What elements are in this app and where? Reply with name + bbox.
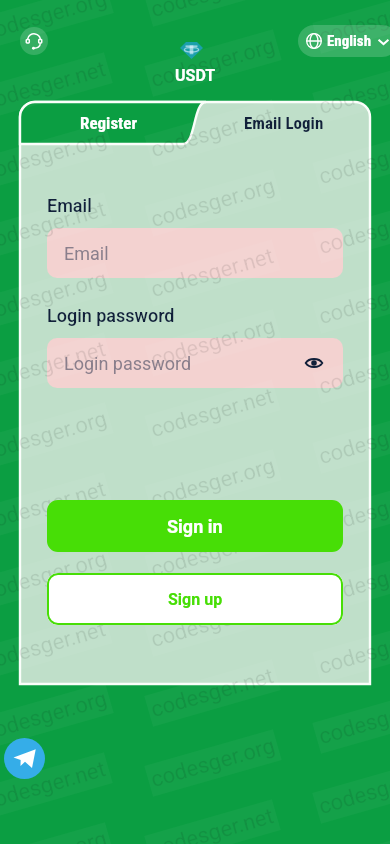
staticText: codesger.org <box>0 546 110 606</box>
staticText: codesger.net <box>316 200 390 260</box>
button[interactable]: English <box>298 25 390 57</box>
staticText: codesger.net <box>148 663 277 723</box>
staticText: codesger.org <box>316 410 390 470</box>
staticText: codesger.org <box>0 266 110 326</box>
staticText: codesger.net <box>148 383 277 443</box>
staticText: Login password <box>47 305 175 326</box>
staticText: codesger.org <box>316 550 390 610</box>
button[interactable]: Email <box>47 228 343 278</box>
staticText: codesger.org <box>0 406 110 466</box>
button[interactable]: Email Login <box>198 102 370 144</box>
staticText: codesger.org <box>148 733 278 793</box>
staticText: Email <box>47 195 92 216</box>
staticText: codesger.net <box>0 616 109 676</box>
staticText: Sign up <box>168 590 223 609</box>
staticText: codesger.org <box>316 0 390 50</box>
staticText: Email Login <box>244 113 324 133</box>
button[interactable]: Login password <box>47 338 343 388</box>
staticText: codesger.org <box>148 313 278 373</box>
staticText: codesger.net <box>316 340 390 400</box>
staticText: codesger.org <box>316 130 390 190</box>
staticText: codesger.org <box>0 126 110 186</box>
staticText: codesger.net <box>0 336 109 396</box>
staticText: USDT <box>175 66 216 85</box>
staticText: codesger.net <box>0 196 109 256</box>
staticText: codesger.net <box>0 476 109 536</box>
button[interactable]: Sign in <box>47 500 343 552</box>
staticText: codesger.org <box>148 453 278 513</box>
staticText: English <box>327 32 372 50</box>
button[interactable]: Register <box>20 102 198 144</box>
staticText: codesger.org <box>0 0 110 46</box>
staticText: codesger.net <box>0 756 109 816</box>
staticText: codesger.org <box>0 686 110 746</box>
staticText: codesger.net <box>148 103 277 163</box>
button[interactable]: Show password <box>299 348 329 378</box>
staticText: codesger.net <box>148 803 277 844</box>
staticText: codesger.net <box>316 760 390 820</box>
staticText: codesger.org <box>148 33 278 93</box>
staticText: codesger.net <box>316 480 390 540</box>
staticText: codesger.net <box>148 523 277 583</box>
staticText: codesger.net <box>0 56 109 116</box>
staticText: Email <box>64 243 109 264</box>
staticText: codesger.net <box>148 0 277 23</box>
staticText: Login password <box>64 353 192 374</box>
staticText: Register <box>80 113 138 133</box>
staticText: codesger.net <box>316 60 390 120</box>
staticText: codesger.org <box>316 270 390 330</box>
staticText: codesger.org <box>148 593 278 653</box>
staticText: codesger.org <box>316 690 390 750</box>
button[interactable]: Sign up <box>47 573 343 625</box>
staticText: codesger.org <box>148 173 278 233</box>
staticText: codesger.org <box>0 826 110 844</box>
staticText: codesger.net <box>148 243 277 303</box>
button[interactable]: Customer support <box>20 27 48 55</box>
staticText: codesger.net <box>316 620 390 680</box>
staticText: Sign in <box>167 516 223 537</box>
button[interactable]: Telegram <box>4 738 45 779</box>
